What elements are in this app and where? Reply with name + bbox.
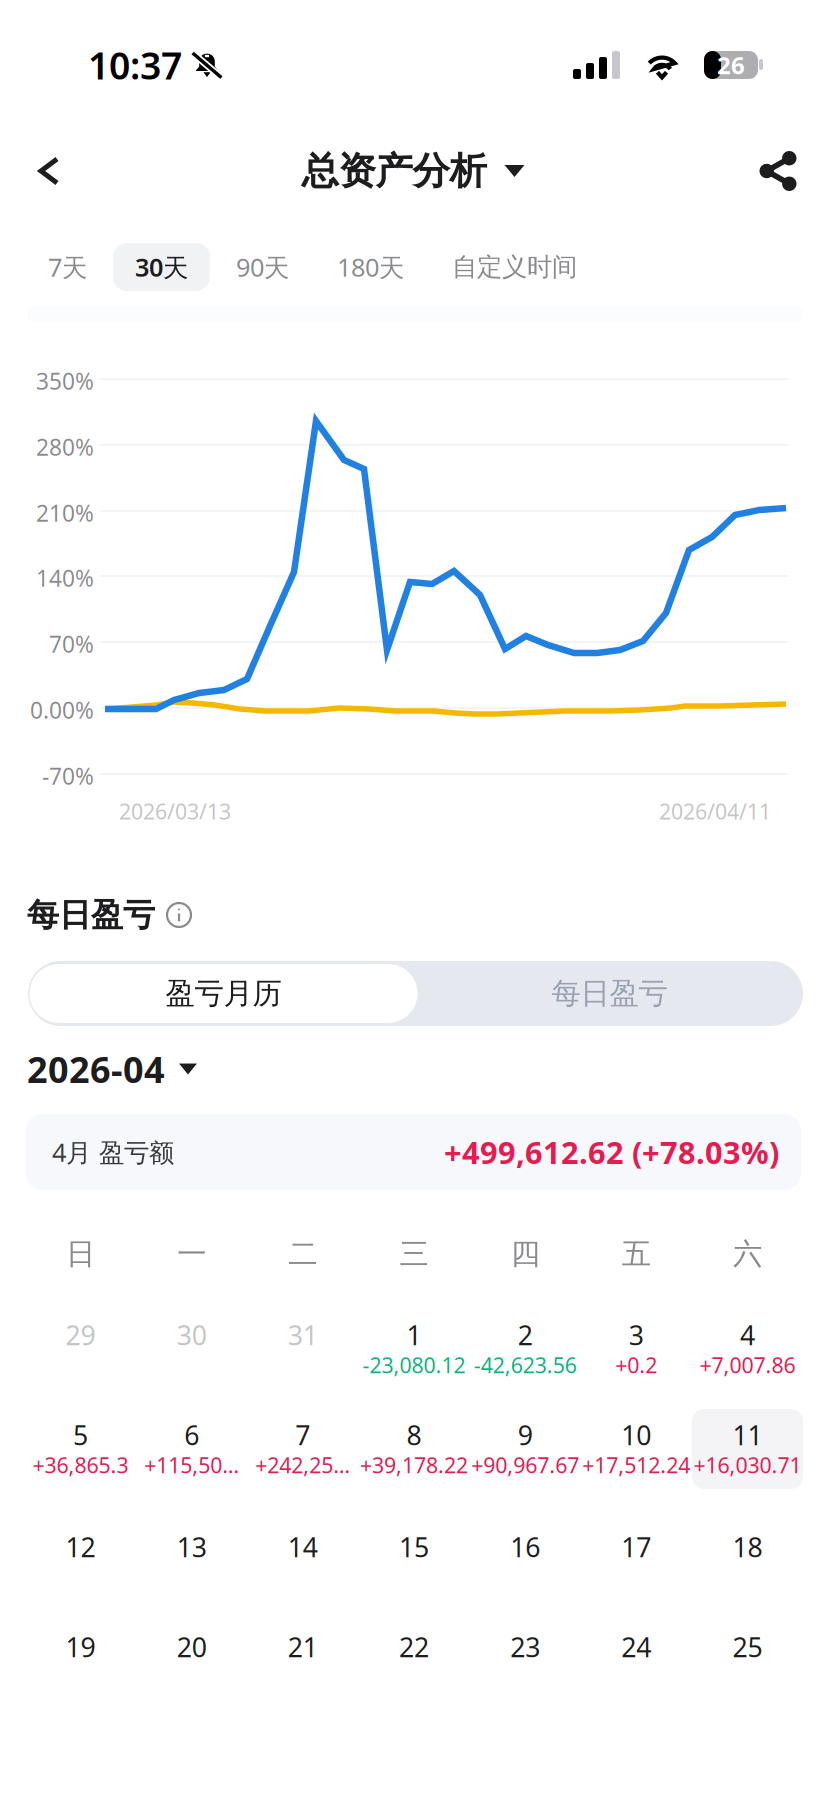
button[interactable]: 1 bbox=[358, 1309, 469, 1389]
button[interactable]: 4 bbox=[692, 1309, 803, 1389]
staticText: 20 bbox=[177, 1629, 207, 1665]
button[interactable]: 总资产分析 bbox=[301, 128, 524, 214]
staticText: 14 bbox=[288, 1529, 318, 1565]
button[interactable]: 30 bbox=[136, 1309, 247, 1389]
staticText: +39,178.22 bbox=[360, 1451, 468, 1479]
staticText: 五 bbox=[622, 1236, 651, 1272]
button[interactable]: 90天 bbox=[214, 243, 311, 291]
staticText: +17,512.24 bbox=[582, 1451, 690, 1479]
staticText: 17 bbox=[621, 1529, 651, 1565]
staticText: +242,25… bbox=[255, 1451, 350, 1479]
button[interactable]: 16 bbox=[470, 1521, 581, 1601]
staticText: 2 bbox=[518, 1317, 533, 1353]
staticText: 29 bbox=[66, 1317, 96, 1353]
staticText: 6 bbox=[184, 1417, 199, 1453]
staticText: 30天 bbox=[135, 250, 188, 284]
staticText: 140% bbox=[36, 563, 94, 593]
staticText: +16,030.71 bbox=[693, 1451, 801, 1479]
staticText: 8 bbox=[406, 1417, 421, 1453]
staticText: 日 bbox=[66, 1236, 95, 1272]
staticText: 19 bbox=[66, 1629, 96, 1665]
staticText: 4 bbox=[740, 1317, 755, 1353]
staticText: 13 bbox=[177, 1529, 207, 1565]
button[interactable]: 180天 bbox=[315, 243, 426, 291]
staticText: 10 bbox=[621, 1417, 651, 1453]
staticText: 7 bbox=[295, 1417, 310, 1453]
button[interactable]: 18 bbox=[692, 1521, 803, 1601]
staticText: 18 bbox=[732, 1529, 762, 1565]
staticText: -42,623.56 bbox=[474, 1351, 577, 1379]
staticText: 70% bbox=[49, 629, 94, 659]
staticText: 90天 bbox=[236, 250, 289, 284]
staticText: 六 bbox=[733, 1236, 762, 1272]
button[interactable]: 3 bbox=[581, 1309, 692, 1389]
button[interactable]: 30天 bbox=[113, 243, 210, 291]
staticText: 15 bbox=[399, 1529, 429, 1565]
staticText: 280% bbox=[36, 432, 94, 462]
staticText: 2026-04 bbox=[27, 1045, 165, 1093]
button[interactable]: 5 bbox=[25, 1409, 136, 1489]
staticText: 二 bbox=[288, 1236, 317, 1272]
button[interactable]: 7 bbox=[247, 1409, 358, 1489]
button[interactable]: 每日盈亏 bbox=[417, 964, 801, 1023]
button[interactable]: 8 bbox=[358, 1409, 469, 1489]
staticText: 盈亏月历 bbox=[165, 975, 281, 1011]
staticText: 四 bbox=[511, 1236, 540, 1272]
staticText: 2026/03/13 bbox=[119, 797, 231, 825]
staticText: 25 bbox=[732, 1629, 762, 1665]
button[interactable]: 12 bbox=[25, 1521, 136, 1601]
button[interactable]: 自定义时间 bbox=[430, 243, 599, 291]
button[interactable]: 9 bbox=[470, 1409, 581, 1489]
staticText: 自定义时间 bbox=[452, 251, 577, 282]
staticText: 23 bbox=[510, 1629, 540, 1665]
button[interactable]: 15 bbox=[358, 1521, 469, 1601]
staticText: -70% bbox=[42, 761, 94, 791]
staticText: 26 bbox=[717, 49, 745, 81]
button[interactable]: 13 bbox=[136, 1521, 247, 1601]
button[interactable]: 17 bbox=[581, 1521, 692, 1601]
staticText: 11 bbox=[732, 1417, 762, 1453]
button[interactable]: 2026-04 bbox=[0, 1048, 320, 1090]
staticText: 3 bbox=[629, 1317, 644, 1353]
staticText: 180天 bbox=[337, 250, 404, 284]
staticText: 一 bbox=[177, 1236, 206, 1272]
button[interactable]: 22 bbox=[358, 1621, 469, 1701]
button[interactable]: Back bbox=[0, 128, 98, 214]
button[interactable]: 29 bbox=[25, 1309, 136, 1389]
button[interactable]: 6 bbox=[136, 1409, 247, 1489]
staticText: 10:37 bbox=[88, 40, 182, 90]
staticText: 总资产分析 bbox=[301, 148, 486, 194]
button[interactable]: 19 bbox=[25, 1621, 136, 1701]
button[interactable]: 11 bbox=[692, 1409, 803, 1489]
button[interactable]: 10 bbox=[581, 1409, 692, 1489]
staticText: +7,007.86 bbox=[699, 1351, 795, 1379]
staticText: 31 bbox=[288, 1317, 318, 1353]
staticText: +0.2 bbox=[615, 1351, 657, 1379]
staticText: 30 bbox=[177, 1317, 207, 1353]
staticText: +90,967.67 bbox=[471, 1451, 579, 1479]
button[interactable]: 23 bbox=[470, 1621, 581, 1701]
button[interactable]: 31 bbox=[247, 1309, 358, 1389]
staticText: +115,50… bbox=[144, 1451, 239, 1479]
staticText: 三 bbox=[399, 1236, 428, 1272]
button[interactable]: 20 bbox=[136, 1621, 247, 1701]
button[interactable]: 24 bbox=[581, 1621, 692, 1701]
button[interactable]: 2 bbox=[470, 1309, 581, 1389]
button[interactable]: Share bbox=[728, 128, 828, 214]
staticText: +499,612.62 (+78.03%) bbox=[444, 1132, 779, 1172]
staticText: 350% bbox=[36, 366, 94, 396]
staticText: 每日盈亏 bbox=[27, 895, 155, 935]
staticText: 0.00% bbox=[30, 695, 94, 725]
button[interactable]: 盈亏月历 bbox=[29, 964, 417, 1023]
staticText: 24 bbox=[621, 1629, 651, 1665]
staticText: 4月 盈亏额 bbox=[52, 1135, 174, 1169]
button[interactable]: 14 bbox=[247, 1521, 358, 1601]
staticText: 22 bbox=[399, 1629, 429, 1665]
button[interactable]: 25 bbox=[692, 1621, 803, 1701]
staticText: 5 bbox=[73, 1417, 88, 1453]
staticText: +36,865.3 bbox=[33, 1451, 129, 1479]
staticText: 16 bbox=[510, 1529, 540, 1565]
button[interactable]: 7天 bbox=[26, 243, 109, 291]
button[interactable]: 21 bbox=[247, 1621, 358, 1701]
staticText: -23,080.12 bbox=[362, 1351, 465, 1379]
